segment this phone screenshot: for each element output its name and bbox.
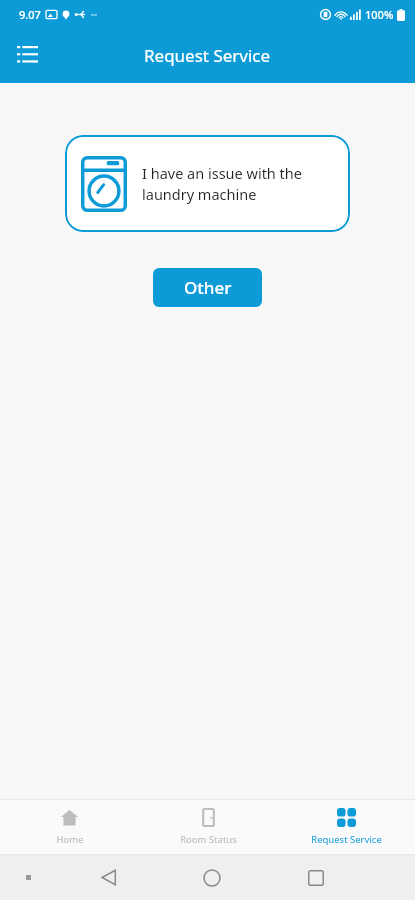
- staticText: Home: [56, 833, 84, 846]
- staticText: Room Status: [180, 833, 237, 846]
- staticText: Request Service: [144, 44, 271, 67]
- button[interactable]: Back: [56, 855, 160, 900]
- button[interactable]: Recent apps: [264, 855, 368, 900]
- button[interactable]: Home: [0, 800, 139, 854]
- button[interactable]: I have an issue with the laundry machine: [65, 135, 350, 232]
- staticText: 100%: [365, 7, 394, 22]
- button[interactable]: Home: [160, 855, 264, 900]
- button[interactable]: Request Service: [277, 800, 415, 854]
- staticText: 9.07: [19, 7, 41, 22]
- button[interactable]: Room Status: [139, 800, 277, 854]
- staticText: I have an issue with the laundry machine: [142, 163, 334, 205]
- button[interactable]: Open navigation menu: [6, 35, 48, 77]
- button[interactable]: Other: [153, 268, 262, 307]
- staticText: Other: [184, 276, 232, 299]
- staticText: Request Service: [311, 833, 382, 846]
